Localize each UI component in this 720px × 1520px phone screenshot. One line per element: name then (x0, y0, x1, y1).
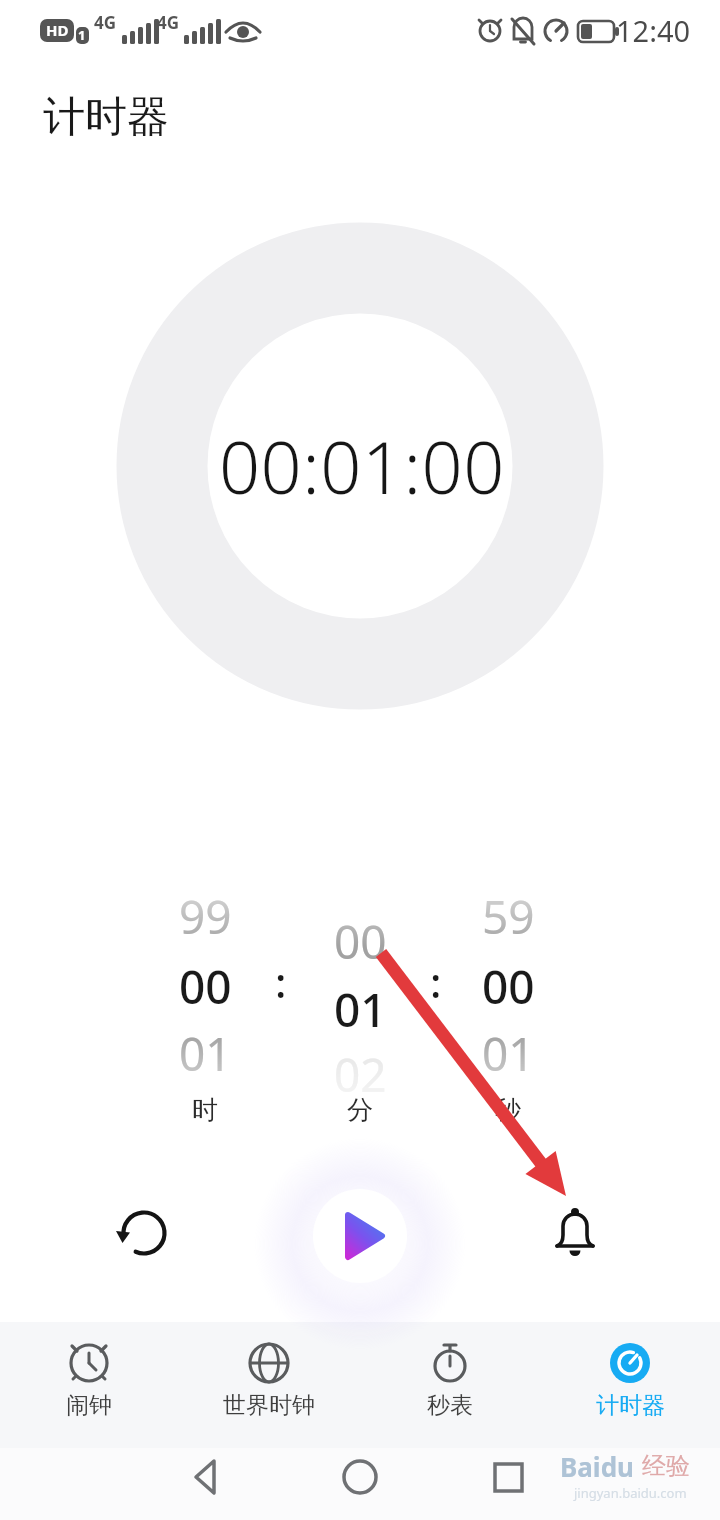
staticText: 01 (179, 1022, 232, 1085)
staticText: 时 (192, 1094, 218, 1127)
staticText: 4G (94, 11, 117, 34)
staticText: 世界时钟 (223, 1391, 315, 1420)
staticText: jingyan.baidu.com (574, 1484, 687, 1502)
staticText: 12:40 (616, 11, 691, 50)
staticText: 计时器 (596, 1391, 665, 1420)
button[interactable] (360, 1322, 540, 1448)
staticText: 00:01:00 (219, 417, 505, 515)
staticText: Baidu (560, 1449, 634, 1484)
button[interactable] (525, 1181, 625, 1281)
staticText: : (275, 953, 287, 1010)
staticText: 计时器 (43, 91, 169, 144)
button[interactable] (315, 1450, 405, 1514)
staticText: HD (46, 20, 69, 40)
staticText: : (430, 953, 442, 1010)
button[interactable] (540, 1322, 720, 1448)
staticText: 00 (482, 955, 535, 1018)
staticText: 59 (482, 885, 535, 948)
button[interactable] (463, 1450, 553, 1514)
staticText: 01 (334, 978, 387, 1041)
staticText: 4G (157, 11, 180, 34)
staticText: 秒 (495, 1094, 521, 1127)
staticText: 秒表 (427, 1391, 473, 1420)
button[interactable] (0, 1322, 180, 1448)
button[interactable] (94, 1183, 194, 1283)
staticText: 00 (334, 910, 387, 973)
staticText: 99 (179, 885, 232, 948)
staticText: 00 (179, 955, 232, 1018)
staticText: 1 (78, 26, 86, 44)
staticText: 经验 (642, 1451, 690, 1481)
button[interactable] (296, 1172, 424, 1300)
staticText: 分 (347, 1094, 373, 1127)
staticText: 01 (482, 1022, 535, 1085)
button[interactable] (160, 1450, 250, 1514)
staticText: 02 (334, 1043, 387, 1106)
button[interactable] (180, 1322, 360, 1448)
staticText: 闹钟 (66, 1391, 112, 1420)
